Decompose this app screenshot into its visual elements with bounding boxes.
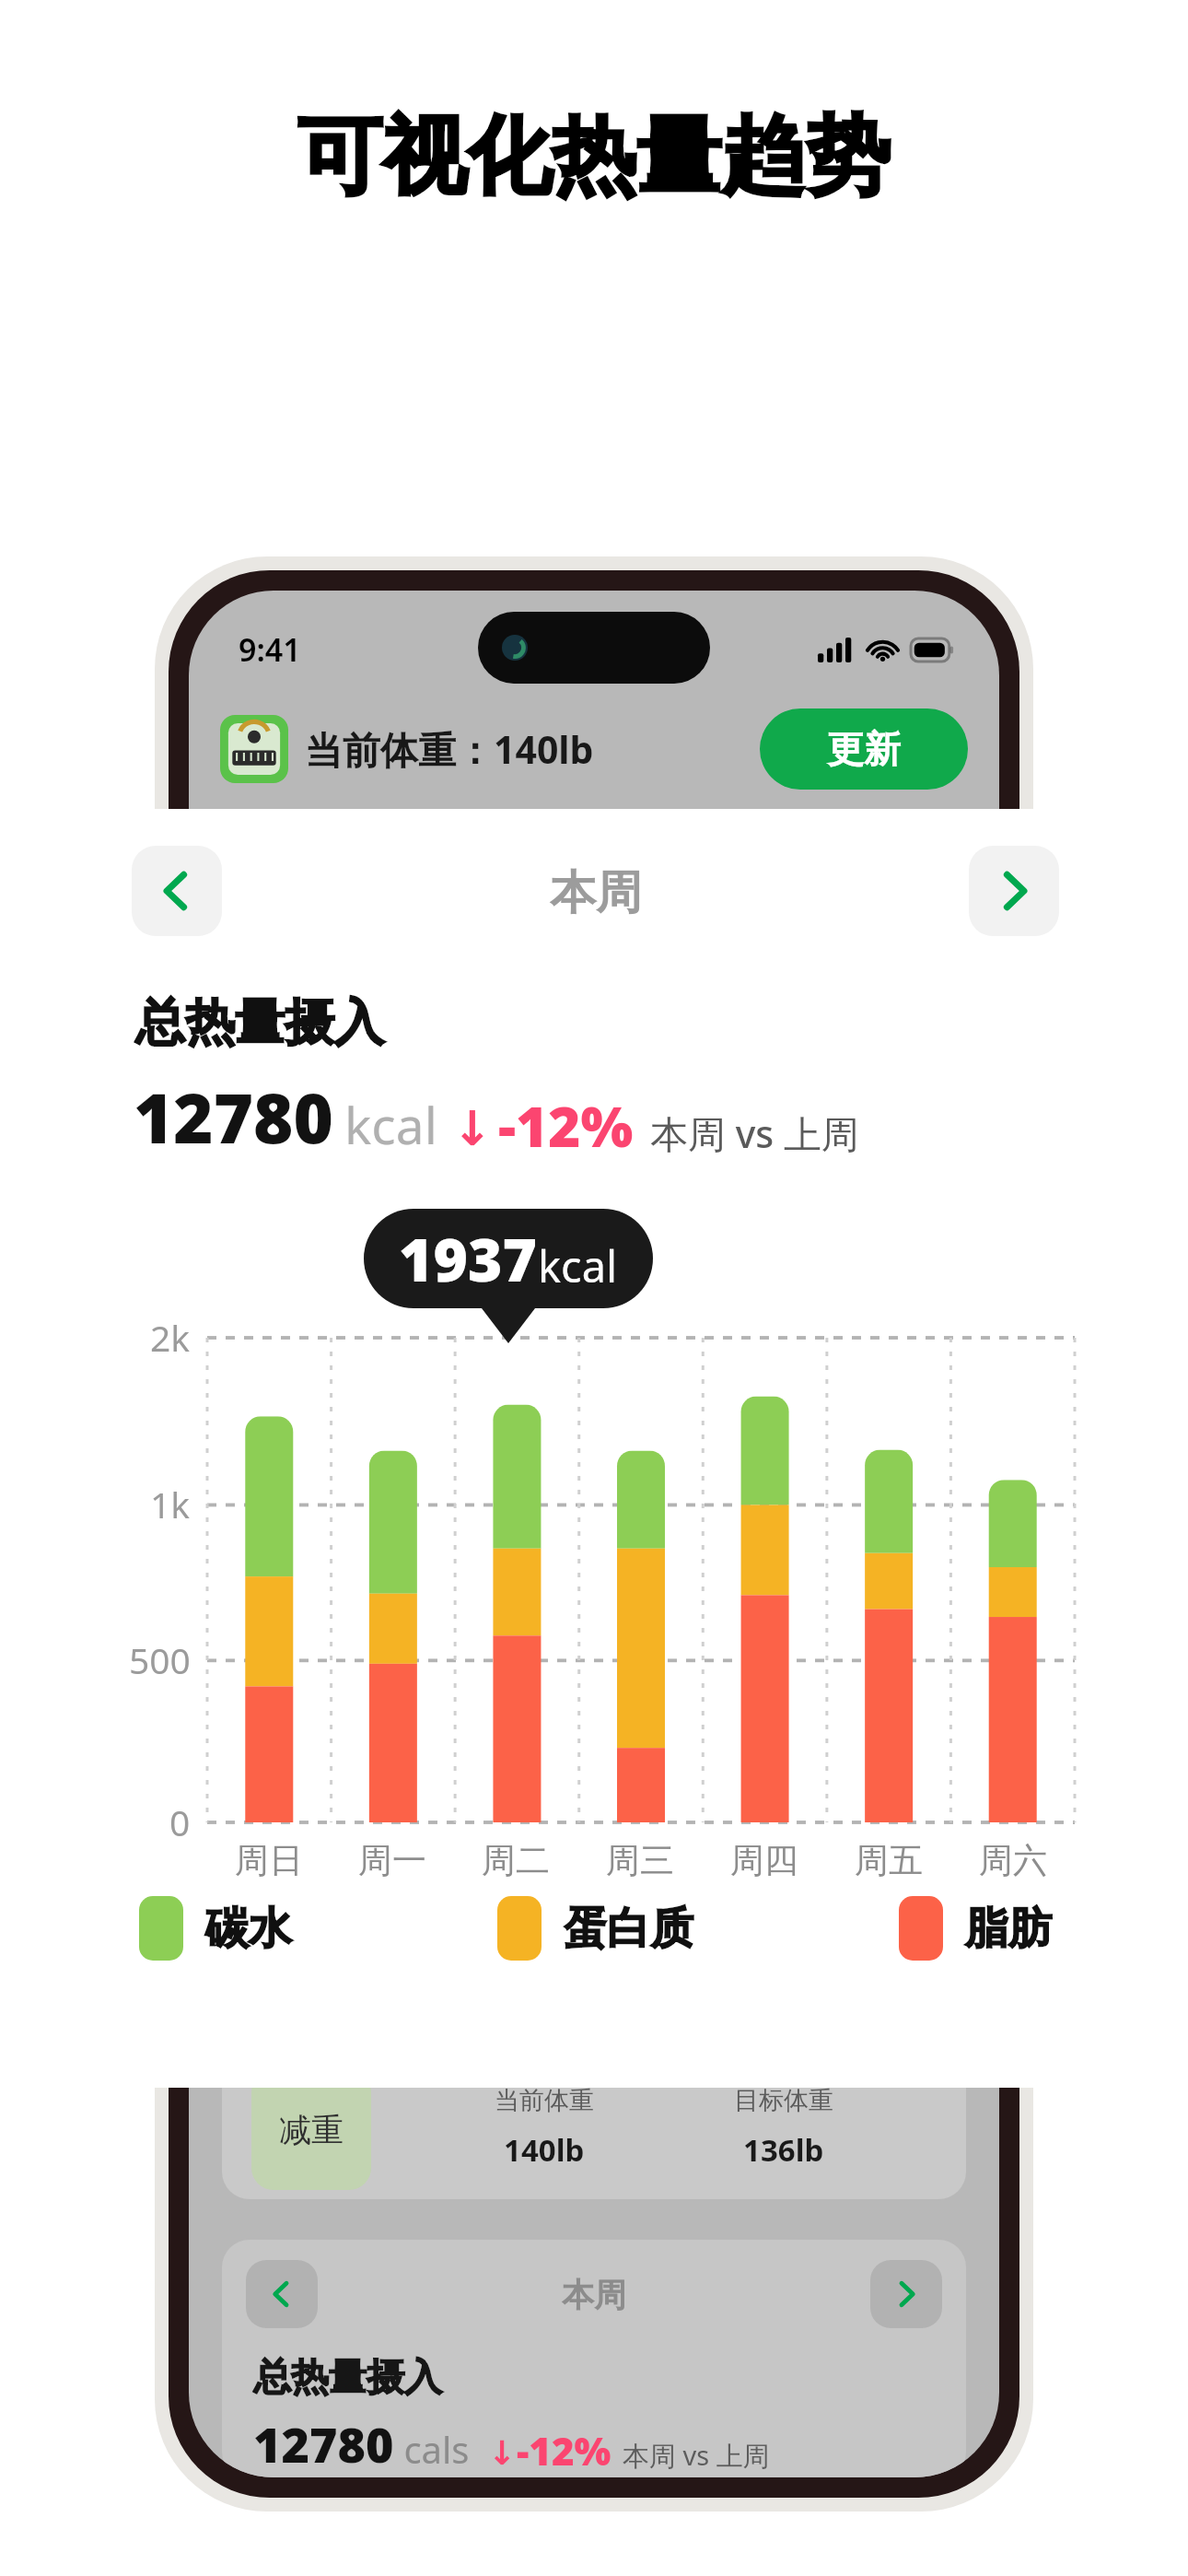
staticText: -12%	[498, 1088, 634, 1164]
staticText: 1937	[399, 1219, 538, 1299]
staticText: -12%	[517, 2424, 611, 2476]
staticText: 当前体重	[495, 2085, 594, 2116]
staticText: 136lb	[743, 2129, 824, 2171]
staticText: 周六	[979, 1839, 1047, 1882]
staticText: kcal	[344, 1090, 437, 1159]
staticText: 500	[129, 1635, 191, 1684]
button[interactable]: 更新	[760, 708, 968, 790]
staticText: 12780	[253, 2411, 394, 2476]
staticText: 9:41	[239, 628, 301, 671]
staticText: 0	[169, 1797, 191, 1846]
staticText: ↓	[488, 2434, 517, 2473]
staticText: cals	[394, 2424, 470, 2474]
staticText: 总热量摄入	[135, 991, 384, 1054]
staticText: 本周	[562, 2275, 626, 2315]
button[interactable]: 碳水	[139, 1896, 292, 1961]
staticText: 2k	[150, 1313, 191, 1362]
staticText: 当前体重：140lb	[305, 723, 594, 775]
button[interactable]: 脂肪	[899, 1896, 1052, 1961]
staticText: kcal	[538, 1236, 618, 1295]
staticText: 140lb	[504, 2129, 585, 2171]
staticText: 周四	[730, 1839, 798, 1882]
button[interactable]: 本周	[222, 2240, 966, 2477]
staticText: 脂肪	[965, 1902, 1052, 1956]
staticText: 周日	[235, 1839, 303, 1882]
staticText: 12780	[134, 1071, 333, 1164]
staticText: 蛋白质	[564, 1902, 693, 1956]
staticText: 减重	[279, 2110, 344, 2150]
staticText: 周一	[358, 1839, 426, 1882]
staticText: 1k	[150, 1480, 191, 1528]
staticText: 本周 vs 上周	[623, 2437, 770, 2474]
button[interactable]: 1937	[399, 1209, 618, 1308]
button[interactable]: Next week	[969, 846, 1059, 936]
staticText: 本周 vs 上周	[650, 1107, 859, 1159]
staticText: ↓	[452, 1101, 493, 1157]
button[interactable]: Previous week	[132, 846, 222, 936]
staticText: 周五	[855, 1839, 923, 1882]
staticText: 周三	[606, 1839, 674, 1882]
staticText: 总热量摄入	[253, 2354, 442, 2402]
staticText: 更新	[827, 726, 901, 772]
button[interactable]: 蛋白质	[497, 1896, 693, 1961]
staticText: 目标体重	[734, 2085, 833, 2116]
button[interactable]: 减重	[222, 2061, 966, 2199]
staticText: 本周	[550, 864, 642, 922]
staticText: 可视化热量趋势	[297, 103, 891, 210]
staticText: 周二	[482, 1839, 550, 1882]
staticText: 碳水	[205, 1902, 292, 1956]
